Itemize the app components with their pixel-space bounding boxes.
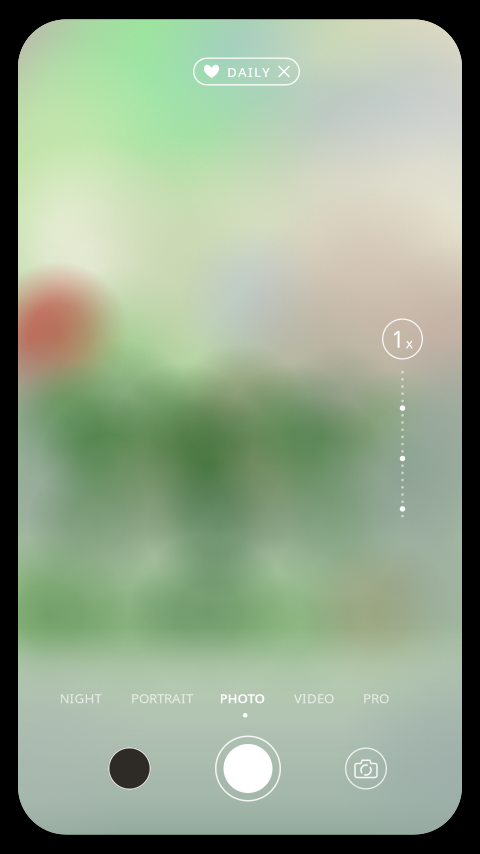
button[interactable]: Zoom 1x <box>382 318 423 359</box>
button[interactable]: PHOTO <box>203 688 281 708</box>
staticText: D A I L Y <box>227 63 270 81</box>
staticText: VIDEO <box>294 689 334 707</box>
button[interactable]: D A I L Y <box>193 57 300 85</box>
button[interactable]: Last photo <box>108 747 151 790</box>
staticText: NIGHT <box>59 689 101 707</box>
staticText: PHOTO <box>219 689 264 707</box>
button[interactable]: Flip camera <box>345 747 387 789</box>
button[interactable]: VIDEO <box>281 688 347 708</box>
button[interactable]: PORTRAIT <box>121 688 203 708</box>
staticText: x <box>405 333 413 353</box>
staticText: PRO <box>363 689 389 707</box>
button[interactable]: PRO <box>347 688 405 708</box>
staticText: PORTRAIT <box>131 689 193 707</box>
button[interactable]: Shutter <box>215 735 281 801</box>
button[interactable]: NIGHT <box>40 688 121 708</box>
staticText: 1 <box>391 324 404 354</box>
